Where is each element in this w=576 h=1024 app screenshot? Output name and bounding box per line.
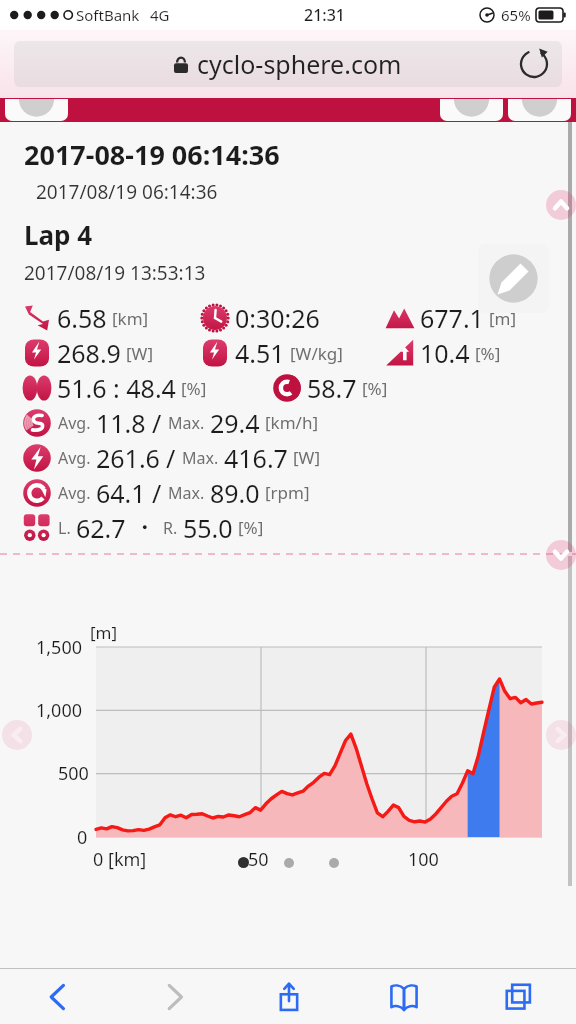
staticText: Lap 4 bbox=[24, 217, 93, 252]
button[interactable]: Edit bbox=[478, 244, 549, 313]
staticText: / bbox=[152, 476, 162, 510]
button[interactable]: Previous activity bbox=[546, 190, 576, 220]
staticText: Max. bbox=[182, 447, 219, 469]
staticText: 1,500 bbox=[36, 635, 83, 660]
staticText: 62.7 bbox=[76, 511, 126, 545]
staticText: Max. bbox=[168, 412, 205, 434]
staticText: / bbox=[152, 406, 162, 440]
staticText: 268.9 bbox=[57, 336, 121, 370]
staticText: 100 bbox=[408, 847, 439, 872]
staticText: 1,000 bbox=[36, 698, 83, 723]
button[interactable]: Tabs bbox=[461, 969, 576, 1024]
staticText: [km] bbox=[112, 307, 149, 330]
staticText: 0 [km] bbox=[93, 847, 147, 872]
staticText: 6.58 bbox=[57, 301, 107, 335]
staticText: 65% bbox=[501, 5, 531, 25]
staticText: 500 bbox=[58, 761, 89, 786]
button[interactable]: Reload bbox=[518, 48, 550, 80]
button[interactable]: Browser tab bbox=[440, 99, 503, 121]
staticText: [%] bbox=[181, 377, 207, 400]
staticText: [%] bbox=[362, 377, 388, 400]
button[interactable]: Share bbox=[231, 969, 346, 1024]
staticText: 261.6 bbox=[96, 441, 160, 475]
button[interactable]: Page 3 bbox=[329, 858, 339, 868]
staticText: 10.4 bbox=[420, 336, 470, 370]
button[interactable]: cyclo-sphere.com bbox=[14, 41, 562, 87]
staticText: 58.7 bbox=[307, 371, 357, 405]
button[interactable]: Page 2 bbox=[284, 858, 294, 868]
staticText: [rpm] bbox=[265, 481, 310, 504]
staticText: L. bbox=[58, 517, 71, 539]
staticText: [%] bbox=[238, 516, 264, 539]
staticText: 416.7 bbox=[224, 441, 288, 475]
button[interactable]: Back bbox=[0, 969, 116, 1024]
staticText: R. bbox=[163, 517, 178, 539]
staticText: [W/kg] bbox=[290, 342, 343, 365]
staticText: Avg. bbox=[58, 482, 91, 504]
staticText: [km/h] bbox=[265, 411, 318, 434]
staticText: 21:31 bbox=[304, 4, 345, 26]
staticText: SoftBank bbox=[76, 5, 140, 25]
staticText: [m] bbox=[90, 621, 118, 644]
staticText: Avg. bbox=[58, 447, 91, 469]
button[interactable]: Page 1 bbox=[238, 857, 249, 868]
staticText: 2017-08-19 06:14:36 bbox=[24, 136, 280, 173]
staticText: cyclo-sphere.com bbox=[197, 47, 402, 81]
button[interactable]: Forward bbox=[116, 969, 231, 1024]
staticText: 2017/08/19 13:53:13 bbox=[24, 260, 206, 286]
staticText: 64.1 bbox=[96, 476, 146, 510]
button[interactable]: Previous chart bbox=[2, 720, 32, 750]
staticText: ・ bbox=[132, 512, 157, 543]
staticText: 89.0 bbox=[210, 476, 260, 510]
staticText: [W] bbox=[293, 446, 320, 469]
staticText: 55.0 bbox=[183, 511, 233, 545]
button[interactable]: Bookmarks bbox=[346, 969, 461, 1024]
staticText: [W] bbox=[126, 342, 153, 365]
button[interactable]: Browser tab bbox=[5, 99, 68, 121]
staticText: 677.1 bbox=[420, 301, 484, 335]
staticText: 2017/08/19 06:14:36 bbox=[36, 179, 218, 205]
staticText: / bbox=[166, 441, 176, 475]
staticText: 50 bbox=[248, 847, 269, 872]
staticText: 11.8 bbox=[96, 406, 146, 440]
button[interactable]: Browser tab bbox=[508, 99, 571, 121]
staticText: [m] bbox=[489, 307, 517, 330]
staticText: 4.51 bbox=[235, 336, 285, 370]
button[interactable]: Next activity bbox=[546, 540, 576, 570]
staticText: Avg. bbox=[58, 412, 91, 434]
staticText: [%] bbox=[475, 342, 501, 365]
button[interactable]: Next chart bbox=[546, 720, 576, 750]
staticText: Max. bbox=[168, 482, 205, 504]
staticText: 51.6 : 48.4 bbox=[57, 371, 176, 405]
staticText: 29.4 bbox=[210, 406, 260, 440]
staticText: 0 bbox=[77, 825, 88, 850]
staticText: 0:30:26 bbox=[235, 301, 320, 335]
staticText: 4G bbox=[150, 5, 170, 25]
